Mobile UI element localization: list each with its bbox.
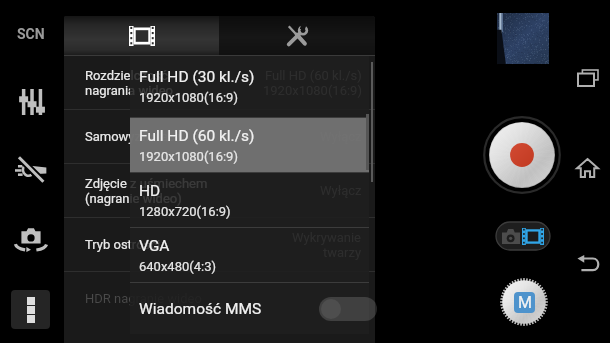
staticText: Full HD (60 kl./s) xyxy=(265,68,362,83)
button[interactable]: Wiadomość MMS xyxy=(130,283,369,334)
button[interactable]: SCN xyxy=(8,22,54,46)
button[interactable]: Tools xyxy=(219,16,375,55)
button[interactable]: Full HD (60 kl./s) xyxy=(130,118,369,172)
button[interactable]: Switch camera xyxy=(11,217,51,257)
staticText: Samowyzwalacz xyxy=(85,129,182,144)
button[interactable]: VGA xyxy=(130,228,369,282)
staticText: VGA xyxy=(139,237,170,255)
button[interactable]: Home xyxy=(570,150,605,185)
button[interactable]: HDR nagranie wideo xyxy=(64,272,375,325)
staticText: Rozdzielczość xyxy=(85,68,168,83)
button[interactable]: Back xyxy=(570,245,605,280)
button[interactable]: Record xyxy=(483,116,561,194)
staticText: Wykrywanie xyxy=(292,230,362,245)
staticText: Wiadomość MMS xyxy=(139,300,262,318)
button[interactable]: Flash off xyxy=(11,148,51,188)
staticText: nagrania wideo xyxy=(85,83,173,98)
staticText: HD xyxy=(139,182,161,200)
staticText: Zdjęcie z uśmiechem xyxy=(85,176,208,191)
button[interactable]: Zdjęcie z uśmiechem xyxy=(64,164,375,217)
button[interactable]: Recents xyxy=(570,60,605,95)
button[interactable]: Camera video toggle xyxy=(496,222,550,250)
staticText: Wyłącz xyxy=(320,183,362,198)
button[interactable]: Mode M xyxy=(500,278,548,326)
button[interactable]: Samowyzwalacz xyxy=(64,110,375,163)
staticText: 1920x1080(16:9) xyxy=(263,83,362,98)
staticText: (nagranie wideo) xyxy=(85,191,182,206)
staticText: 1280x720(16:9) xyxy=(139,204,231,219)
button[interactable]: HD xyxy=(130,173,369,227)
button[interactable]: Tryb ostrości xyxy=(64,218,375,271)
button[interactable]: Settings sliders xyxy=(11,82,51,122)
staticText: SCN xyxy=(17,26,45,42)
staticText: 1920x1080(16:9) xyxy=(139,90,238,105)
button[interactable]: Last photo xyxy=(497,13,549,64)
button[interactable]: Video settings xyxy=(64,16,219,55)
staticText: Tryb ostrości xyxy=(85,237,161,252)
button[interactable]: Rozdzielczość xyxy=(64,56,375,109)
button[interactable]: Full HD (30 kl./s) xyxy=(130,56,369,117)
staticText: HDR nagranie wideo xyxy=(85,291,202,306)
staticText: Full HD (60 kl./s) xyxy=(139,127,255,145)
staticText: twarzy xyxy=(323,245,362,260)
staticText: 1920x1080(16:9) xyxy=(139,149,238,164)
button[interactable]: More options xyxy=(11,290,50,329)
button[interactable] xyxy=(319,297,377,321)
staticText: Full HD (30 kl./s) xyxy=(139,68,255,86)
staticText: 640x480(4:3) xyxy=(139,259,217,274)
staticText: M xyxy=(518,293,532,312)
